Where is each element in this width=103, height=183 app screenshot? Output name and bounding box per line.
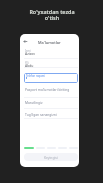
staticText: Azizov [25,51,35,56]
staticText: Ro'yxatdan tezda o'tish [29,8,75,22]
button[interactable]: Back [23,39,28,44]
staticText: Keyingisi [44,155,58,159]
staticText: Ma'lumotlar [38,40,61,45]
staticText: Ismi [25,49,31,53]
staticText: Pasport ma'lumotlari kiriting [25,87,70,91]
staticText: Telefon raqami [26,74,45,78]
staticText: Yili [25,61,29,65]
staticText: Manzilingiz [25,100,43,104]
staticText: Tug'ilgan sanangizni [25,112,57,116]
button[interactable]: Keyingisi [24,153,78,161]
staticText: Abdu [25,63,34,68]
button[interactable]: Telefon raqami [24,73,78,83]
